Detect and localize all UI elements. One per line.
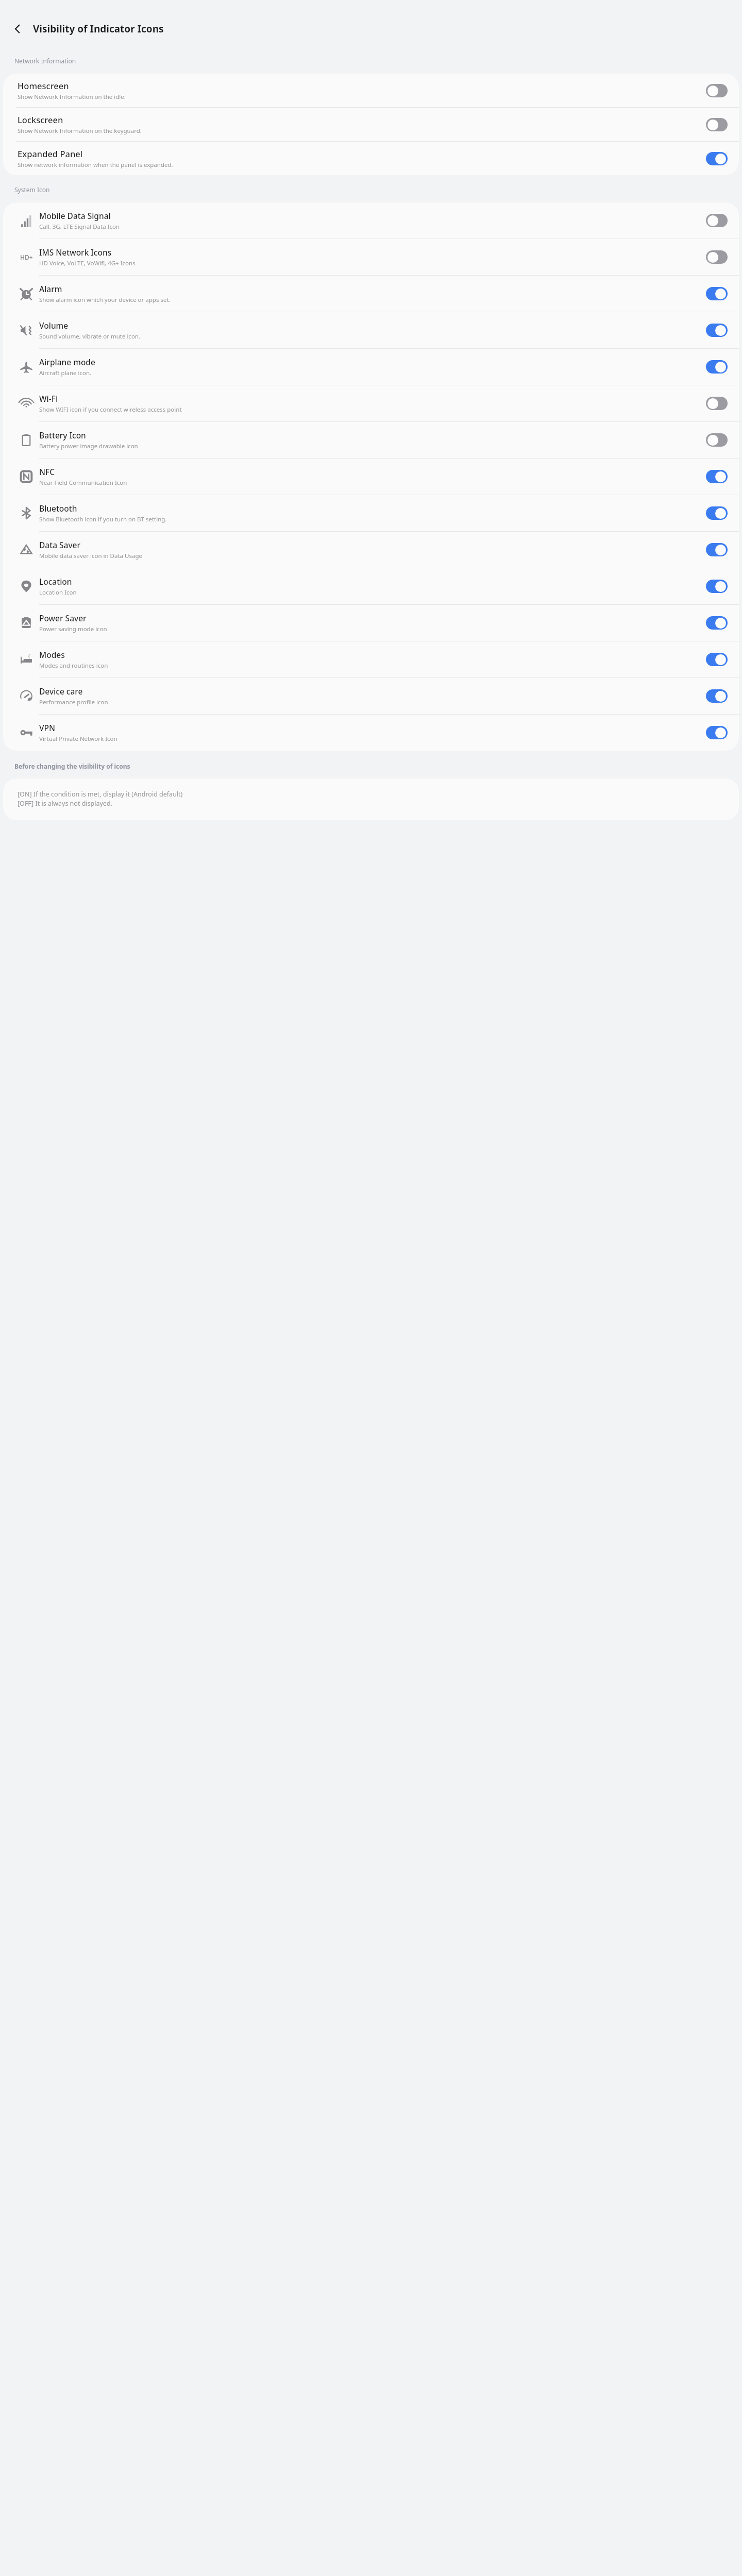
- button[interactable]: On: [706, 506, 728, 520]
- staticText: Aircraft plane icon.: [39, 369, 92, 377]
- button[interactable]: Off: [706, 118, 728, 131]
- staticText: Bluetooth: [39, 503, 77, 514]
- staticText: Alarm: [39, 283, 62, 294]
- staticText: Call, 3G, LTE Signal Data Icon: [39, 223, 120, 231]
- staticText: Wi-Fi: [39, 393, 58, 404]
- button[interactable]: Device care: [3, 678, 739, 714]
- button[interactable]: Off: [706, 84, 728, 97]
- button[interactable]: NFC: [3, 459, 739, 495]
- staticText: Modes and routines icon: [39, 662, 108, 670]
- button[interactable]: On: [706, 470, 728, 483]
- staticText: Network Information: [14, 57, 76, 65]
- button[interactable]: On: [706, 360, 728, 374]
- button[interactable]: Battery Icon: [3, 422, 739, 458]
- button[interactable]: Off: [706, 433, 728, 447]
- staticText: Battery power image drawable icon: [39, 442, 138, 450]
- button[interactable]: Expanded Panel: [3, 142, 739, 175]
- button[interactable]: Wi-Fi: [3, 385, 739, 421]
- staticText: Show alarm icon which your device or app…: [39, 296, 171, 304]
- staticText: Near Field Communication Icon: [39, 479, 127, 487]
- button[interactable]: On: [706, 152, 728, 165]
- button[interactable]: Homescreen: [3, 74, 739, 107]
- staticText: [ON] If the condition is met, display it…: [18, 790, 183, 808]
- staticText: NFC: [39, 466, 55, 477]
- staticText: Lockscreen: [18, 114, 63, 125]
- staticText: Device care: [39, 686, 83, 697]
- button[interactable]: Modes: [3, 641, 739, 677]
- button[interactable]: HD+: [3, 239, 739, 275]
- staticText: Volume: [39, 320, 69, 331]
- staticText: Airplane mode: [39, 357, 95, 367]
- button[interactable]: On: [706, 580, 728, 593]
- staticText: Visibility of Indicator Icons: [33, 22, 164, 36]
- button[interactable]: Bluetooth: [3, 495, 739, 531]
- staticText: Performance profile icon: [39, 698, 108, 706]
- button[interactable]: On: [706, 543, 728, 556]
- button[interactable]: Airplane mode: [3, 349, 739, 385]
- staticText: Mobile data saver icon in Data Usage: [39, 552, 142, 560]
- button[interactable]: Location: [3, 568, 739, 604]
- staticText: Sound volume, vibrate or mute icon.: [39, 332, 141, 341]
- staticText: Data Saver: [39, 539, 81, 550]
- staticText: Modes: [39, 649, 65, 660]
- staticText: Show Bluetooth icon if you turn on BT se…: [39, 515, 167, 523]
- staticText: Power saving mode icon: [39, 625, 107, 633]
- staticText: Expanded Panel: [18, 148, 83, 159]
- button[interactable]: On: [706, 726, 728, 739]
- button[interactable]: VPN: [3, 715, 739, 751]
- staticText: HD+: [20, 253, 33, 261]
- staticText: Location: [39, 576, 72, 587]
- button[interactable]: Mobile Data Signal: [3, 202, 739, 239]
- staticText: Battery Icon: [39, 430, 86, 440]
- staticText: Mobile Data Signal: [39, 210, 111, 221]
- button[interactable]: Power Saver: [3, 605, 739, 641]
- staticText: Location Icon: [39, 588, 77, 597]
- button[interactable]: Off: [706, 397, 728, 410]
- button[interactable]: On: [706, 324, 728, 337]
- staticText: System Icon: [14, 185, 50, 194]
- button[interactable]: Back: [5, 16, 30, 41]
- staticText: VPN: [39, 722, 56, 733]
- button[interactable]: Alarm: [3, 276, 739, 312]
- staticText: Before changing the visibility of icons: [14, 762, 130, 770]
- button[interactable]: Data Saver: [3, 532, 739, 568]
- staticText: HD Voice, VoLTE, VoWifi, 4G+ Icons: [39, 259, 136, 267]
- button[interactable]: Off: [706, 250, 728, 264]
- staticText: Homescreen: [18, 80, 69, 91]
- staticText: Show Network Information on the idle.: [18, 93, 126, 101]
- staticText: Show network information when the panel …: [18, 161, 173, 169]
- staticText: Show WIFI icon if you connect wireless a…: [39, 405, 182, 414]
- staticText: Show Network Information on the keyguard…: [18, 127, 142, 135]
- button[interactable]: On: [706, 287, 728, 300]
- staticText: Power Saver: [39, 613, 87, 623]
- button[interactable]: On: [706, 653, 728, 666]
- staticText: Virtual Private Network Icon: [39, 735, 117, 743]
- button[interactable]: Off: [706, 214, 728, 227]
- staticText: IMS Network Icons: [39, 247, 112, 258]
- button[interactable]: Lockscreen: [3, 108, 739, 141]
- button[interactable]: Volume: [3, 312, 739, 348]
- button[interactable]: On: [706, 689, 728, 703]
- button[interactable]: On: [706, 616, 728, 630]
